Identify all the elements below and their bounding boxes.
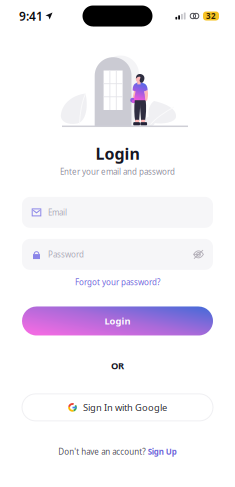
staticText: OR bbox=[111, 359, 124, 372]
staticText: Sign Up bbox=[148, 446, 177, 457]
staticText: Enter your email and password bbox=[60, 166, 175, 177]
staticText: Email bbox=[48, 207, 67, 218]
button[interactable]: Sign In with Google bbox=[22, 394, 213, 421]
staticText: Sign In with Google bbox=[83, 401, 167, 414]
staticText: Password bbox=[48, 249, 84, 260]
staticText: Login bbox=[104, 315, 130, 327]
staticText: Login bbox=[95, 143, 139, 164]
staticText: Forgot your password? bbox=[75, 277, 160, 287]
button[interactable]: Password bbox=[22, 239, 213, 270]
button[interactable]: Forgot your password? bbox=[75, 272, 160, 292]
staticText: 9:41 bbox=[19, 8, 43, 24]
staticText: Don't have an account? bbox=[58, 446, 145, 457]
button[interactable]: Login bbox=[22, 306, 213, 335]
button[interactable]: Don't have an account? bbox=[58, 441, 177, 462]
staticText: 32 bbox=[206, 11, 216, 21]
button[interactable]: Email bbox=[22, 197, 213, 228]
